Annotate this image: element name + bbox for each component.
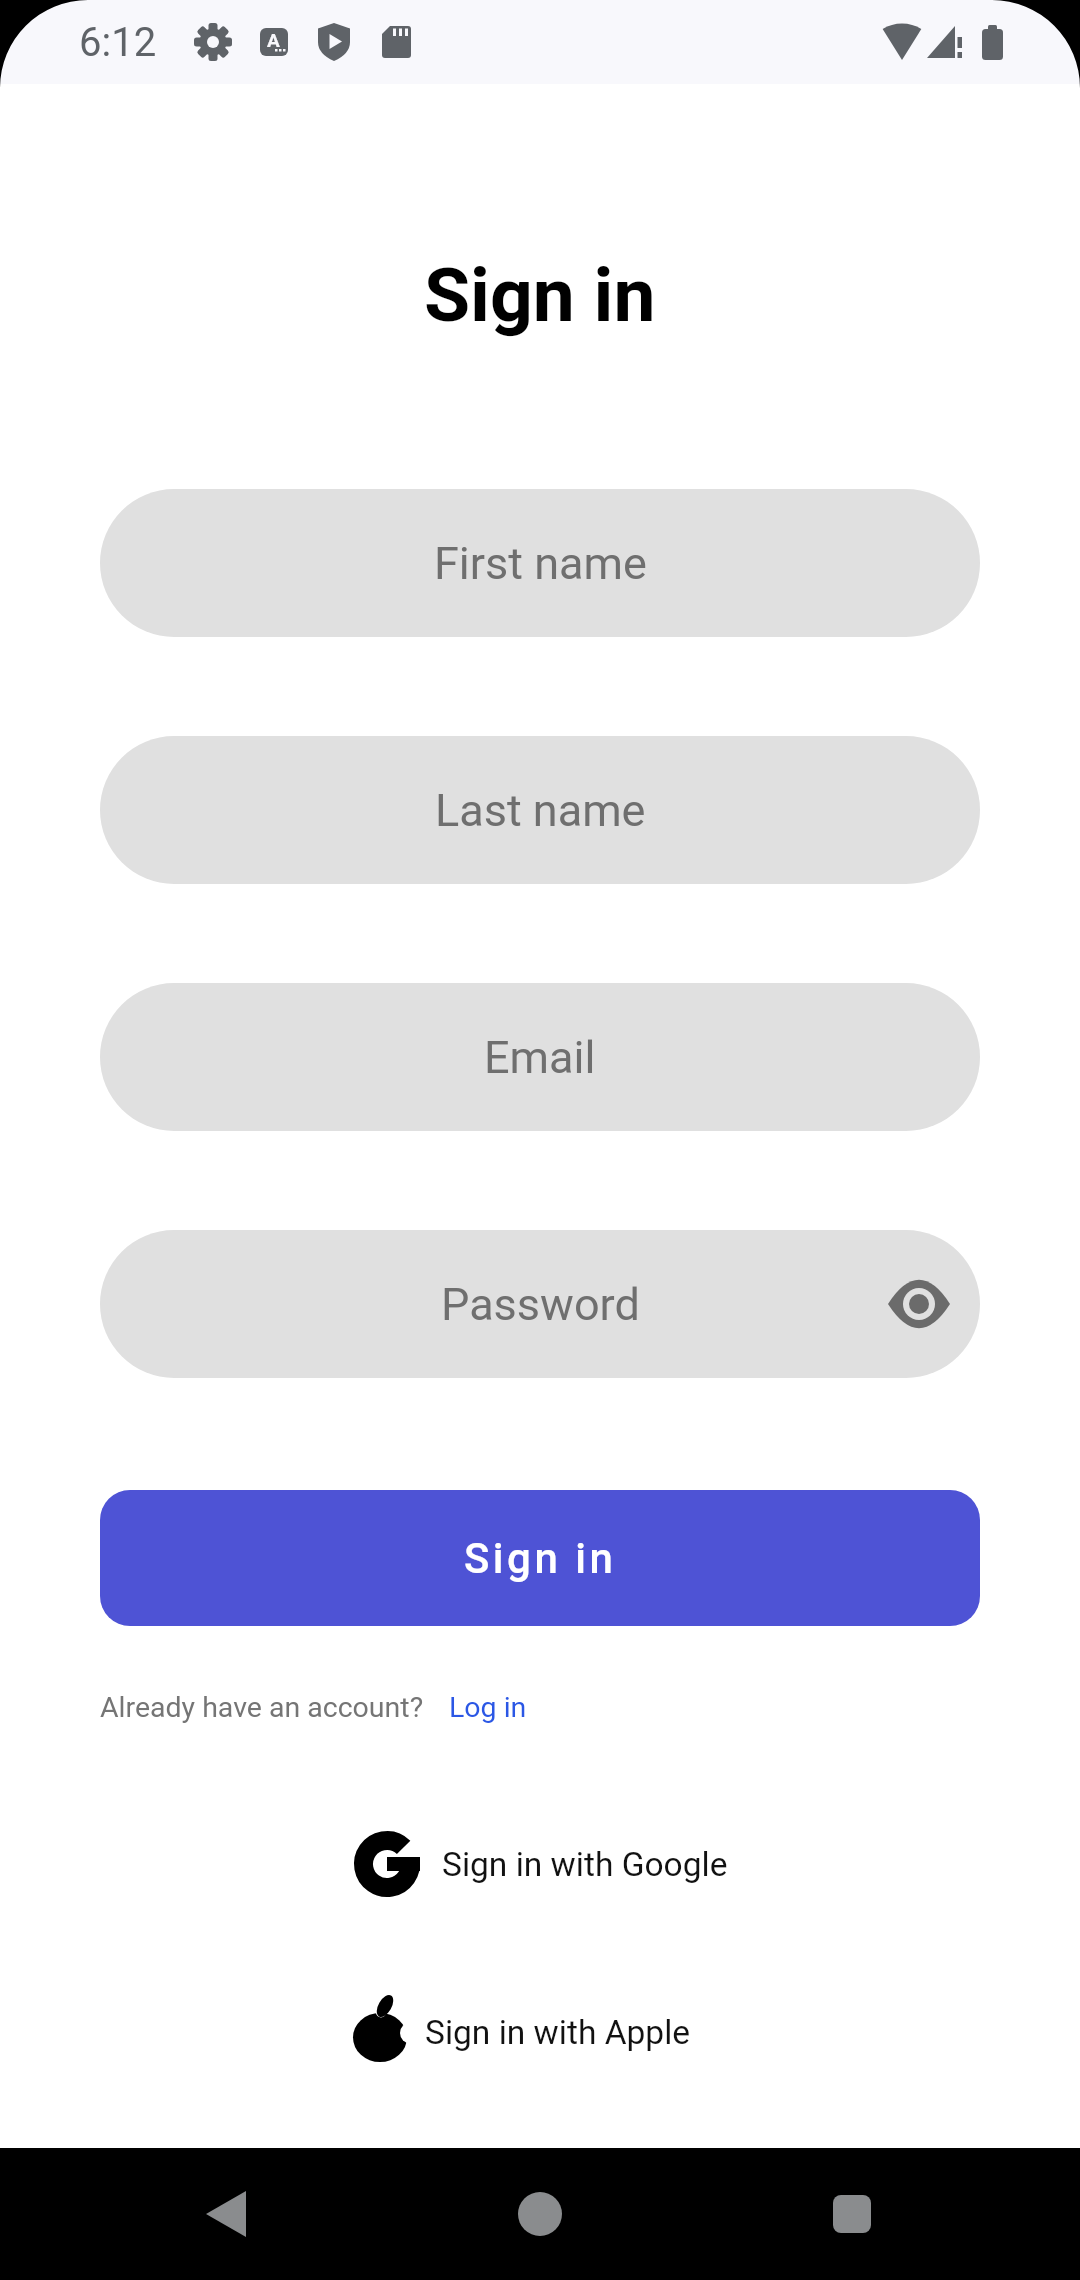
button[interactable]: Sign in with Apple xyxy=(353,1998,691,2066)
staticText: Email xyxy=(484,1031,596,1084)
button[interactable]: Sign in with Google xyxy=(353,1830,728,1898)
staticText: Already have an account? xyxy=(100,1691,424,1724)
button[interactable] xyxy=(518,2192,562,2236)
staticText: Sign in xyxy=(424,251,656,339)
staticText: Password xyxy=(441,1278,640,1331)
staticText: Last name xyxy=(435,784,646,837)
staticText: 6:12 xyxy=(79,19,157,66)
staticText: A xyxy=(267,29,280,51)
button[interactable]: Last name xyxy=(100,736,980,884)
staticText: Sign in xyxy=(464,1534,617,1583)
staticText: Log in xyxy=(449,1691,527,1724)
staticText: First name xyxy=(434,537,647,590)
button[interactable]: Password xyxy=(100,1230,980,1378)
button[interactable]: Log in xyxy=(449,1691,527,1724)
button[interactable] xyxy=(833,2195,871,2233)
staticText: Sign in with Apple xyxy=(425,2013,691,2052)
button[interactable]: Email xyxy=(100,983,980,1131)
button[interactable]: Sign in xyxy=(100,1490,980,1626)
button[interactable]: First name xyxy=(100,489,980,637)
staticText: Sign in with Google xyxy=(442,1845,728,1884)
button[interactable] xyxy=(203,2190,248,2238)
